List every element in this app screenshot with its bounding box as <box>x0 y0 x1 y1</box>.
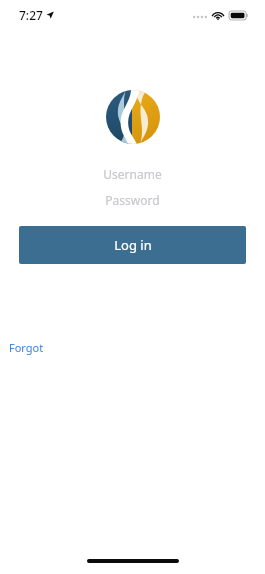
other: App logo <box>106 90 160 144</box>
button[interactable]: Password <box>0 189 265 211</box>
staticText: Log in <box>114 236 152 254</box>
button[interactable]: Username <box>0 163 265 185</box>
staticText: Forgot <box>9 340 44 355</box>
staticText: Password <box>105 192 160 208</box>
button[interactable]: Forgot <box>7 338 46 357</box>
button[interactable]: Log in <box>19 226 246 264</box>
staticText: 7:27 <box>19 7 43 23</box>
staticText: Username <box>103 166 162 182</box>
